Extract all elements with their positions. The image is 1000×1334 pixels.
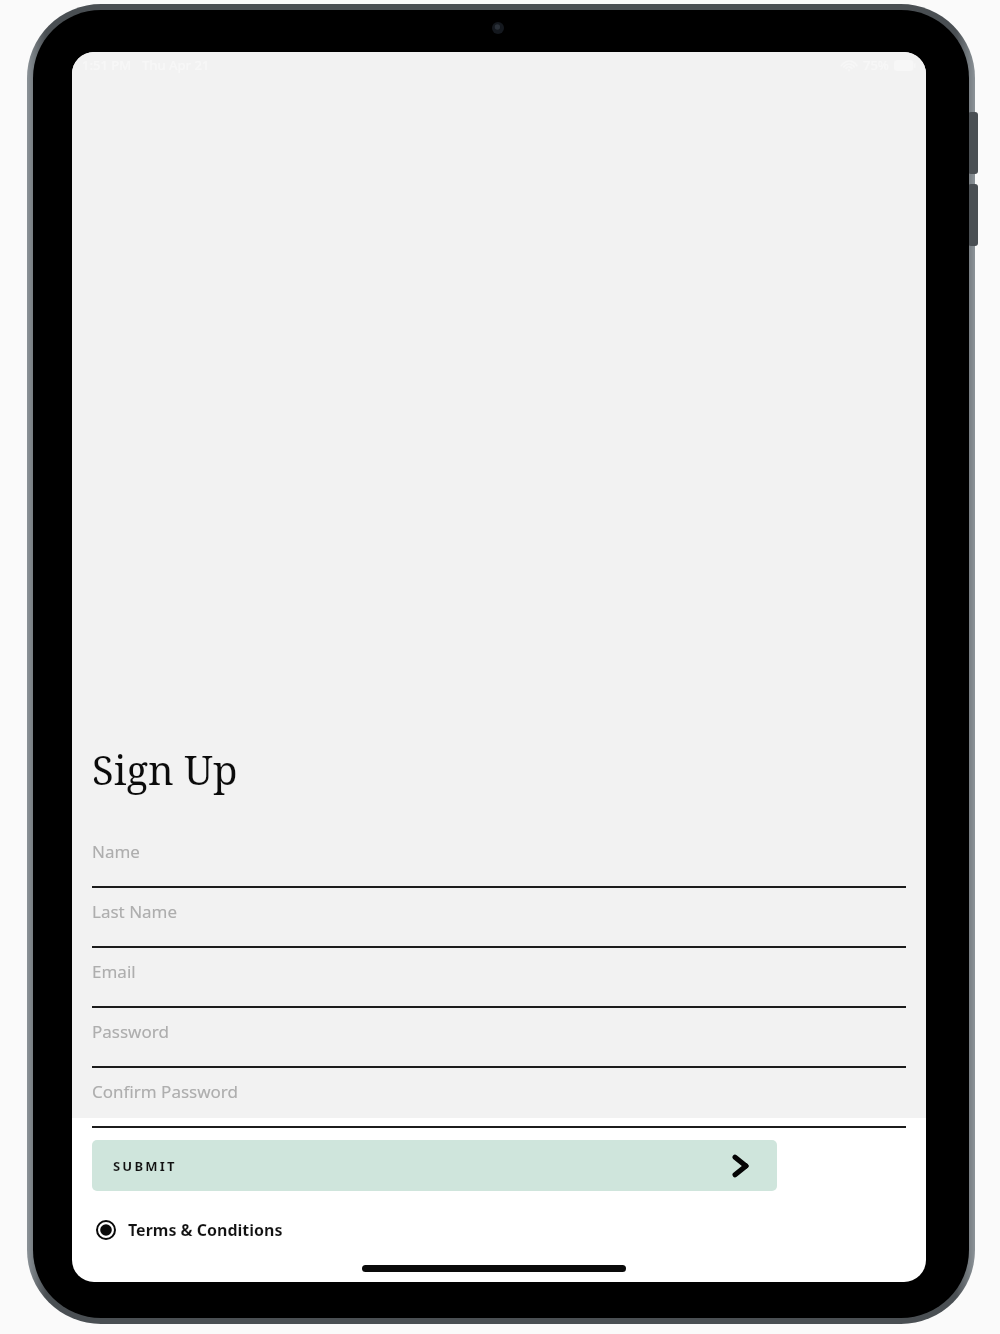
button[interactable]: SUBMIT (92, 1140, 777, 1191)
staticText: Confirm Password (92, 1080, 238, 1103)
button[interactable]: Password (92, 1008, 906, 1068)
button[interactable]: Last Name (92, 888, 906, 948)
staticText: Sign Up (92, 742, 238, 796)
staticText: Email (92, 960, 136, 983)
button[interactable]: Terms & Conditions (88, 1210, 283, 1250)
staticText: SUBMIT (113, 1157, 177, 1175)
staticText: Name (92, 840, 140, 863)
staticText: Password (92, 1020, 169, 1043)
button[interactable]: Confirm Password (92, 1068, 906, 1128)
button[interactable]: Name (92, 828, 906, 888)
button[interactable]: Email (92, 948, 906, 1008)
staticText: Terms & Conditions (128, 1219, 283, 1241)
staticText: Last Name (92, 900, 178, 923)
